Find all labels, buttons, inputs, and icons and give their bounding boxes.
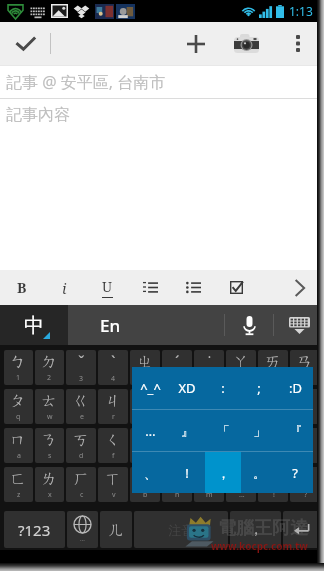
button[interactable]: 記事 @ 安平區, 台南市: [6, 66, 324, 98]
button[interactable]: ㄍ: [66, 389, 96, 424]
button[interactable]: ㄣ: [290, 389, 320, 424]
button[interactable]: Space: [134, 511, 228, 548]
button[interactable]: ㄉ: [35, 350, 64, 385]
staticText: f: [112, 451, 115, 461]
button[interactable]: Symbols: [4, 511, 65, 548]
staticText: c: [80, 490, 84, 500]
button[interactable]: ˋ: [98, 350, 128, 385]
button[interactable]: Voice input: [225, 305, 273, 345]
button[interactable]: ㄌ: [35, 467, 64, 502]
button[interactable]: :: [205, 367, 241, 409]
button[interactable]: 」: [241, 410, 277, 451]
button[interactable]: Bold: [0, 270, 43, 305]
staticText: ㄥ: [297, 469, 314, 489]
button[interactable]: ，: [205, 452, 241, 493]
button[interactable]: Bulleted list: [172, 270, 215, 305]
button[interactable]: Numbered list: [129, 270, 172, 305]
staticText: ˋ: [111, 351, 116, 373]
button[interactable]: ㄙ: [162, 467, 192, 502]
button[interactable]: XD: [169, 367, 205, 409]
button[interactable]: 「: [205, 410, 241, 451]
button[interactable]: ㄈ: [4, 467, 33, 502]
button[interactable]: 、: [132, 452, 169, 493]
button[interactable]: ㄧ: [194, 389, 224, 424]
button[interactable]: ㄒ: [98, 467, 128, 502]
staticText: e: [80, 412, 84, 422]
staticText: ㄟ: [265, 391, 282, 411]
button[interactable]: Checklist: [215, 270, 258, 305]
button[interactable]: 中: [0, 305, 68, 345]
button[interactable]: Enter: [283, 511, 320, 548]
button[interactable]: ㄨ: [194, 428, 224, 463]
button[interactable]: 『: [277, 410, 313, 451]
button[interactable]: ˙: [194, 350, 224, 385]
button[interactable]: !: [169, 452, 205, 493]
button[interactable]: ㄓ: [130, 350, 160, 385]
staticText: www.kocpc.com.tw: [211, 539, 308, 553]
button[interactable]: ;: [241, 367, 277, 409]
staticText: ˇ: [78, 351, 85, 373]
staticText: :D: [289, 379, 302, 397]
staticText: ㄞ: [265, 352, 282, 372]
button[interactable]: 』: [169, 410, 205, 451]
button[interactable]: ㄞ: [258, 350, 288, 385]
button[interactable]: ㄐ: [98, 389, 128, 424]
button[interactable]: ㄋ: [35, 428, 64, 463]
button[interactable]: ㄢ: [290, 350, 320, 385]
staticText: ㄊ: [41, 391, 58, 411]
button[interactable]: ㄘ: [162, 428, 192, 463]
button[interactable]: ㄝ: [226, 467, 256, 502]
button[interactable]: ㄆ: [4, 389, 33, 424]
button[interactable]: ㄖ: [130, 467, 160, 502]
button[interactable]: ㄤ: [290, 428, 320, 463]
button[interactable]: Camera: [218, 22, 275, 65]
button[interactable]: ㄜ: [226, 428, 256, 463]
button[interactable]: Add: [174, 22, 218, 65]
button[interactable]: Underline: [86, 270, 129, 305]
button[interactable]: …: [132, 410, 169, 451]
button[interactable]: ^_^: [132, 367, 169, 409]
button[interactable]: More options: [275, 22, 320, 65]
button[interactable]: Done: [0, 22, 50, 65]
staticText: s: [48, 451, 52, 461]
button[interactable]: 。: [241, 452, 277, 493]
button[interactable]: ㄔ: [130, 389, 160, 424]
button[interactable]: ㄗ: [162, 389, 192, 424]
button[interactable]: ㄦ: [100, 511, 132, 548]
staticText: k: [240, 451, 244, 461]
button[interactable]: ㄅ: [4, 350, 33, 385]
staticText: a: [17, 451, 21, 461]
button[interactable]: ˊ: [162, 350, 192, 385]
button[interactable]: ㄊ: [35, 389, 64, 424]
button[interactable]: ㄡ: [258, 467, 288, 502]
button[interactable]: ㄠ: [258, 428, 288, 463]
button[interactable]: ㄚ: [226, 350, 256, 385]
staticText: 中: [24, 313, 44, 338]
staticText: XD: [178, 379, 196, 397]
button[interactable]: ㄛ: [226, 389, 256, 424]
staticText: 『: [289, 423, 302, 439]
button[interactable]: Comma: [230, 511, 281, 548]
button[interactable]: ㄥ: [290, 467, 320, 502]
staticText: ;: [257, 379, 261, 397]
button[interactable]: ?: [277, 452, 313, 493]
button[interactable]: Italic: [43, 270, 86, 305]
button[interactable]: :D: [277, 367, 313, 409]
button[interactable]: More formatting: [284, 270, 314, 305]
button[interactable]: ˇ: [66, 350, 96, 385]
button[interactable]: 記事內容: [6, 99, 324, 131]
button[interactable]: Hide keyboard: [274, 305, 324, 345]
button[interactable]: ㄇ: [4, 428, 33, 463]
button[interactable]: En: [68, 305, 152, 345]
button[interactable]: Change language: [67, 511, 98, 548]
button[interactable]: ㄕ: [130, 428, 160, 463]
button[interactable]: ㄟ: [258, 389, 288, 424]
button[interactable]: ㄩ: [194, 467, 224, 502]
button[interactable]: ㄏ: [66, 467, 96, 502]
button[interactable]: ㄎ: [66, 428, 96, 463]
staticText: ㄚ: [233, 352, 250, 372]
button[interactable]: ㄑ: [98, 428, 128, 463]
